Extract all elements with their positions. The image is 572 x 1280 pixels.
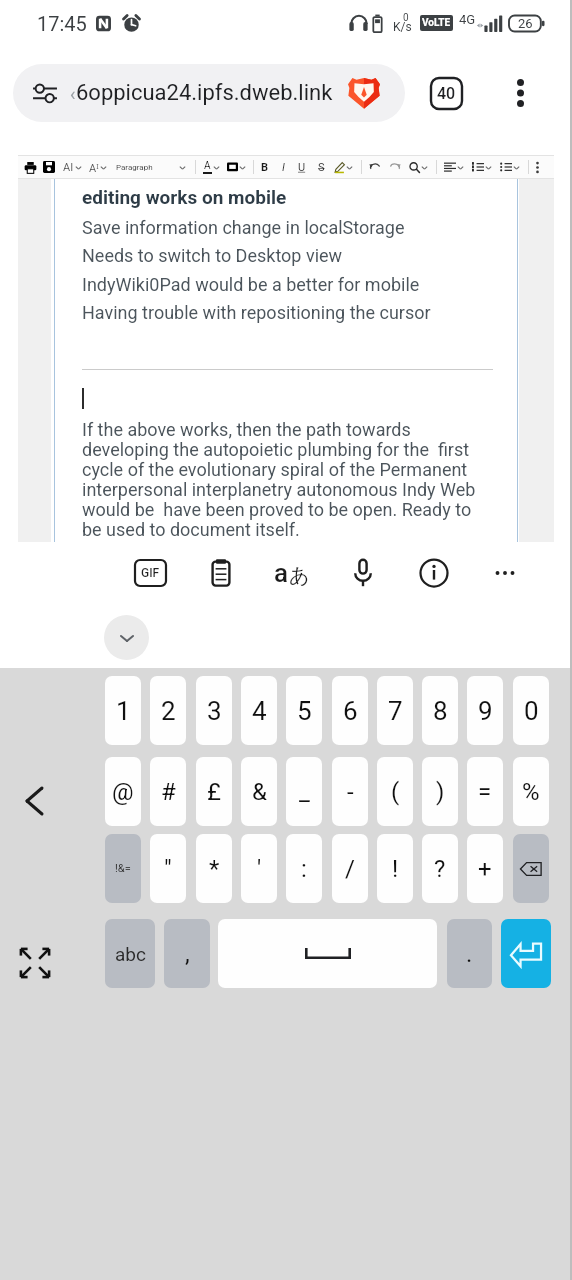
button[interactable]: : — [286, 834, 322, 903]
button[interactable]: Symbols — [105, 834, 141, 903]
button[interactable]: 8 — [422, 676, 458, 745]
button[interactable]: 0 — [513, 676, 549, 745]
staticText: S — [318, 161, 325, 174]
staticText: GIF — [141, 566, 160, 580]
staticText: abc — [115, 943, 146, 965]
staticText: K/s — [393, 20, 412, 34]
button[interactable]: Back — [11, 778, 57, 824]
staticText: 9 — [478, 696, 493, 726]
button[interactable]: 5 — [286, 676, 322, 745]
button[interactable]: Tool — [24, 161, 37, 174]
button[interactable]: ? — [422, 834, 458, 903]
button[interactable]: Info — [410, 549, 458, 597]
button[interactable]: + — [467, 834, 503, 903]
button[interactable]: Tool — [389, 161, 401, 173]
button[interactable]: ' — [241, 834, 277, 903]
button[interactable]: 7 — [377, 676, 413, 745]
staticText: 4 — [252, 696, 267, 726]
staticText: : — [301, 855, 307, 883]
staticText: 6 — [343, 696, 358, 726]
staticText: Needs to switch to Desktop view — [82, 245, 343, 266]
button[interactable]: Site settings — [13, 64, 405, 122]
staticText: _ — [299, 778, 310, 806]
staticText: 0 — [524, 696, 539, 726]
staticText: ‹ — [70, 83, 76, 104]
button[interactable]: / — [332, 834, 368, 903]
staticText: I — [282, 161, 285, 174]
staticText: ' — [257, 855, 262, 883]
button[interactable]: @ — [105, 757, 141, 826]
button[interactable]: Tool — [500, 161, 512, 173]
button[interactable]: # — [150, 757, 186, 826]
button[interactable]: Tool — [369, 161, 381, 173]
staticText: VoLTE — [422, 17, 451, 29]
button[interactable]: 9 — [467, 676, 503, 745]
button[interactable]: , — [164, 919, 210, 988]
button[interactable]: Enter — [501, 919, 551, 988]
button[interactable]: Hide keyboard — [104, 615, 149, 660]
button[interactable]: Tool — [409, 162, 420, 173]
staticText: U — [298, 161, 306, 174]
staticText: # — [161, 778, 176, 806]
staticText: @ — [112, 778, 134, 806]
staticText: * — [209, 855, 220, 883]
staticText: + — [478, 855, 492, 883]
button[interactable]: More — [481, 549, 529, 597]
staticText: Paragraph — [116, 163, 153, 172]
staticText: 8 — [433, 696, 448, 726]
button[interactable]: Tool — [227, 162, 238, 173]
button[interactable]: More options — [494, 67, 546, 119]
button[interactable]: ! — [377, 834, 413, 903]
button[interactable]: Voice input — [339, 549, 387, 597]
button[interactable]: Tool — [334, 162, 345, 173]
other: Site settings — [32, 80, 58, 106]
staticText: 40 — [437, 84, 456, 103]
button[interactable]: 4 — [241, 676, 277, 745]
button[interactable]: & — [241, 757, 277, 826]
staticText: 5 — [297, 696, 312, 726]
button[interactable]: 1 — [105, 676, 141, 745]
button[interactable]: Tool — [472, 161, 484, 173]
staticText: " — [164, 855, 172, 883]
staticText: a — [274, 558, 289, 588]
staticText: 4G — [459, 12, 476, 27]
button[interactable]: 6 — [332, 676, 368, 745]
staticText: 6oppicua24.ipfs.dweb.link — [76, 80, 333, 106]
button[interactable]: Tool — [43, 161, 55, 173]
staticText: 26 — [518, 16, 533, 31]
button[interactable]: = — [467, 757, 503, 826]
button[interactable]: £ — [196, 757, 232, 826]
staticText: 0 — [403, 12, 409, 24]
button[interactable]: _ — [286, 757, 322, 826]
button[interactable]: ( — [377, 757, 413, 826]
button[interactable]: - — [332, 757, 368, 826]
button[interactable]: GIF — [126, 549, 174, 597]
button[interactable]: . — [447, 919, 492, 988]
button[interactable]: % — [513, 757, 549, 826]
staticText: , — [185, 940, 190, 968]
button[interactable]: 3 — [196, 676, 232, 745]
button[interactable]: Space — [218, 919, 437, 988]
button[interactable]: Translate — [268, 549, 316, 597]
button[interactable]: Resize keyboard — [10, 938, 60, 988]
staticText: あ — [289, 563, 310, 588]
button[interactable]: Tool — [444, 161, 456, 173]
staticText: ) — [436, 778, 445, 806]
staticText: A — [204, 160, 211, 172]
staticText: !&= — [115, 862, 131, 875]
staticText: ! — [392, 855, 399, 883]
button[interactable]: ) — [422, 757, 458, 826]
staticText: 2 — [161, 696, 176, 726]
button[interactable]: * — [196, 834, 232, 903]
button[interactable]: Tabs — [423, 70, 469, 116]
button[interactable]: Switch to letters — [105, 919, 155, 988]
button[interactable]: " — [150, 834, 186, 903]
button[interactable]: Backspace — [513, 834, 549, 903]
staticText: Save information change in localStorage — [82, 217, 405, 238]
staticText: = — [478, 778, 492, 806]
staticText: AI — [63, 161, 74, 174]
staticText: . — [466, 940, 473, 968]
button[interactable]: Clipboard — [197, 549, 245, 597]
staticText: & — [252, 778, 267, 806]
button[interactable]: 2 — [150, 676, 186, 745]
